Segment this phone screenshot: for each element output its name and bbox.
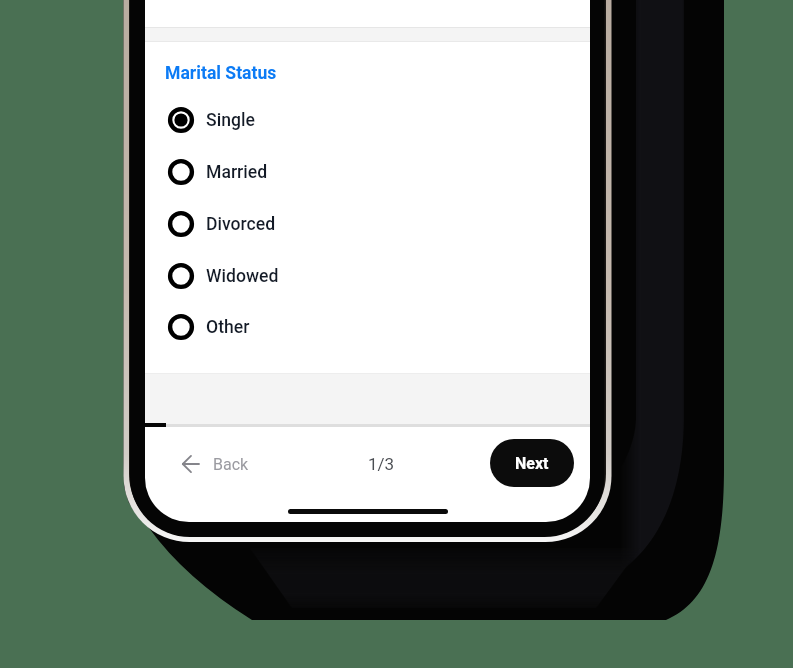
button[interactable]: Single <box>145 97 590 143</box>
staticText: Divorced <box>206 214 276 235</box>
button[interactable]: Widowed <box>145 253 590 299</box>
button[interactable]: Next <box>490 439 574 487</box>
staticText: Next <box>515 454 549 473</box>
staticText: Back <box>213 455 249 474</box>
button[interactable]: Divorced <box>145 201 590 247</box>
staticText: Marital Status <box>165 63 277 84</box>
staticText: Married <box>206 162 268 183</box>
button[interactable]: Married <box>145 149 590 195</box>
button[interactable]: Back <box>177 444 249 484</box>
button[interactable]: Other <box>145 304 590 350</box>
staticText: Widowed <box>206 266 279 287</box>
staticText: Single <box>206 110 255 131</box>
other: Back <box>177 452 201 476</box>
staticText: 1/3 <box>368 454 395 474</box>
staticText: Other <box>206 317 250 338</box>
